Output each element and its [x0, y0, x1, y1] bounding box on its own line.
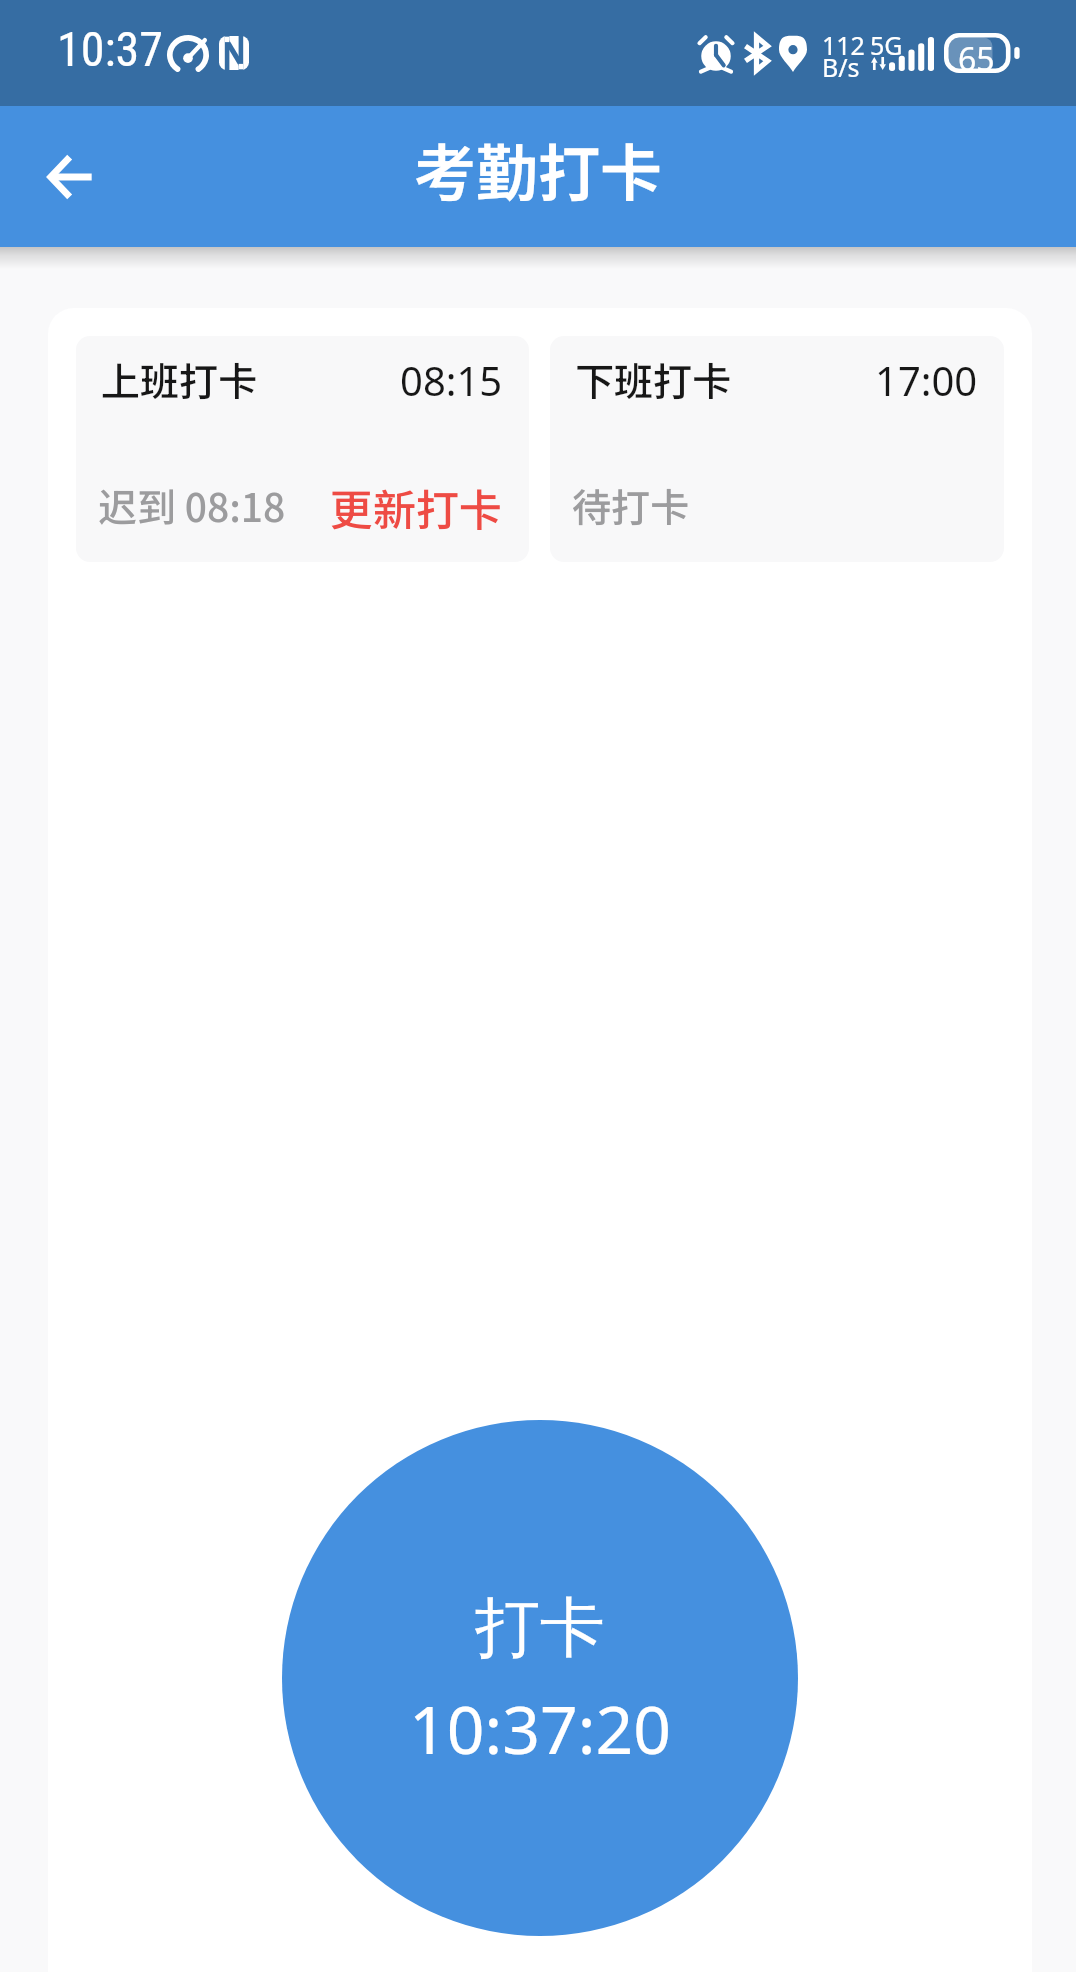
staticText: 17:00: [875, 353, 978, 407]
staticText: 打卡: [475, 1587, 605, 1669]
staticText: 08:15: [400, 353, 503, 407]
staticText: 待打卡: [572, 477, 690, 533]
staticText: 5G: [870, 28, 903, 62]
staticText: 112: [822, 28, 865, 62]
staticText: 10:37:20: [409, 1683, 671, 1773]
staticText: B/s: [822, 50, 860, 84]
button[interactable]: 更新打卡: [330, 476, 502, 538]
button[interactable]: 打卡: [282, 1420, 798, 1936]
staticText: 10:37: [57, 21, 163, 77]
button[interactable]: 上班打卡: [76, 336, 529, 562]
staticText: 下班打卡: [575, 351, 732, 407]
staticText: 考勤打卡: [414, 124, 663, 214]
staticText: 迟到 08:18: [98, 477, 286, 533]
button[interactable]: 下班打卡: [550, 336, 1004, 562]
button[interactable]: Back: [22, 128, 120, 226]
staticText: 上班打卡: [101, 351, 258, 407]
staticText: 65: [958, 37, 995, 81]
